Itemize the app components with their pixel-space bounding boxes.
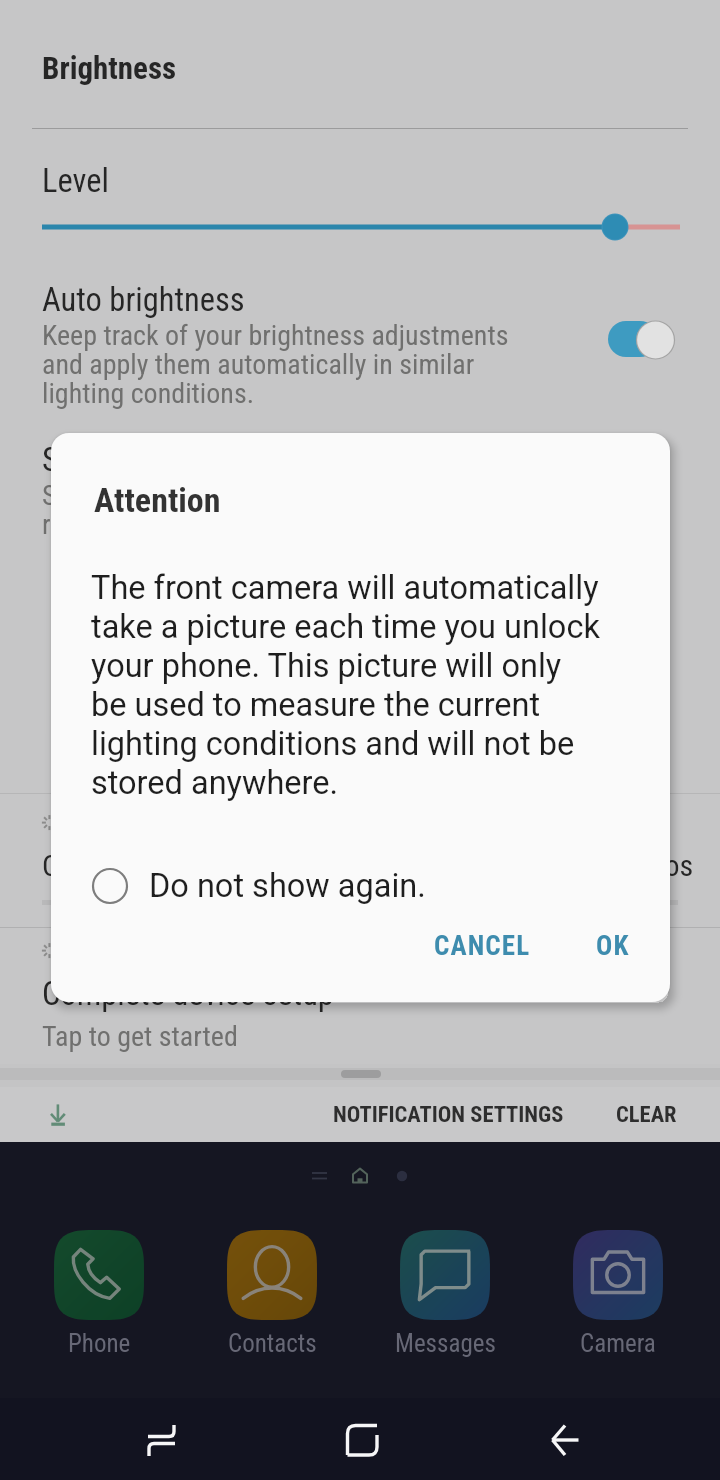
staticText: Attention [94, 480, 221, 520]
button[interactable]: Expand notifications [32, 1092, 84, 1144]
staticText: Camera [580, 1329, 656, 1358]
button[interactable]: Messages [378, 1230, 512, 1358]
staticText: Select screen mode to adjust colour rang… [42, 479, 439, 541]
staticText: Complete device setup [42, 975, 334, 1013]
button[interactable]: Recents [116, 1398, 206, 1480]
staticText: Tap to get started [42, 1020, 238, 1053]
staticText: NOTIFICATION SETTINGS [333, 1101, 564, 1127]
staticText: Contacts [228, 1329, 317, 1358]
button[interactable]: Camera [551, 1230, 685, 1358]
staticText: Level [42, 162, 109, 200]
staticText: The front camera will automatically take… [91, 569, 600, 802]
staticText: Camera [42, 848, 133, 883]
staticText: Phone [68, 1329, 131, 1358]
staticText: Recording videos [490, 848, 694, 883]
button[interactable]: Home [317, 1398, 407, 1480]
button[interactable]: CLEAR [616, 1087, 677, 1140]
staticText: Brightness [42, 50, 177, 86]
button[interactable]: CANCEL [406, 914, 559, 978]
button[interactable]: Do not show again. [84, 853, 484, 919]
staticText: Keep track of your brightness adjustment… [42, 319, 509, 410]
staticText: OK [596, 930, 630, 962]
staticText: Screen mode [42, 441, 210, 479]
staticText: CLEAR [616, 1101, 677, 1127]
button[interactable]: Back [517, 1398, 607, 1480]
staticText: CANCEL [434, 930, 531, 962]
button[interactable]: OK [568, 914, 658, 978]
staticText: Do not show again. [149, 867, 426, 905]
staticText: Messages [395, 1329, 496, 1358]
staticText: Auto brightness [42, 281, 245, 319]
button[interactable]: Contacts [205, 1230, 339, 1358]
button[interactable]: Phone [32, 1230, 166, 1358]
button[interactable]: NOTIFICATION SETTINGS [333, 1087, 564, 1140]
